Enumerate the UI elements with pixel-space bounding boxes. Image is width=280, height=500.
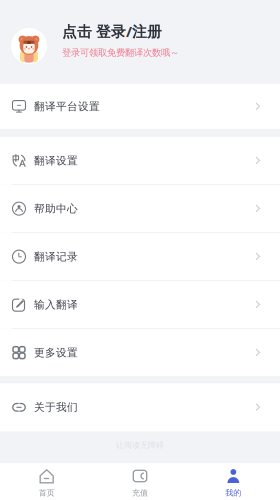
button[interactable]: 关于我们: [0, 383, 280, 431]
button[interactable]: 翻译平台设置: [0, 84, 280, 129]
staticText: 我的: [225, 488, 241, 498]
staticText: 点击 登录/注册: [62, 21, 162, 41]
button[interactable]: 首页: [0, 468, 93, 498]
button[interactable]: 输入翻译: [0, 281, 280, 328]
staticText: 首页: [39, 488, 55, 498]
staticText: 帮助中心: [34, 202, 78, 215]
staticText: 登录可领取免费翻译次数哦～: [62, 47, 179, 58]
button[interactable]: 翻译记录: [0, 233, 280, 280]
button[interactable]: 更多设置: [0, 329, 280, 376]
staticText: 充值: [132, 488, 148, 498]
staticText: 让阅读无障碍: [116, 440, 164, 450]
staticText: 翻译记录: [34, 250, 78, 263]
button[interactable]: 点击 登录/注册: [0, 0, 280, 84]
staticText: 翻译平台设置: [34, 100, 100, 113]
button[interactable]: 翻译设置: [0, 137, 280, 184]
button[interactable]: 充值: [93, 468, 187, 498]
staticText: 翻译设置: [34, 154, 78, 167]
staticText: 输入翻译: [34, 298, 78, 311]
staticText: 关于我们: [34, 401, 78, 414]
button[interactable]: 帮助中心: [0, 185, 280, 232]
button[interactable]: 我的: [187, 468, 280, 498]
staticText: 更多设置: [34, 346, 78, 359]
